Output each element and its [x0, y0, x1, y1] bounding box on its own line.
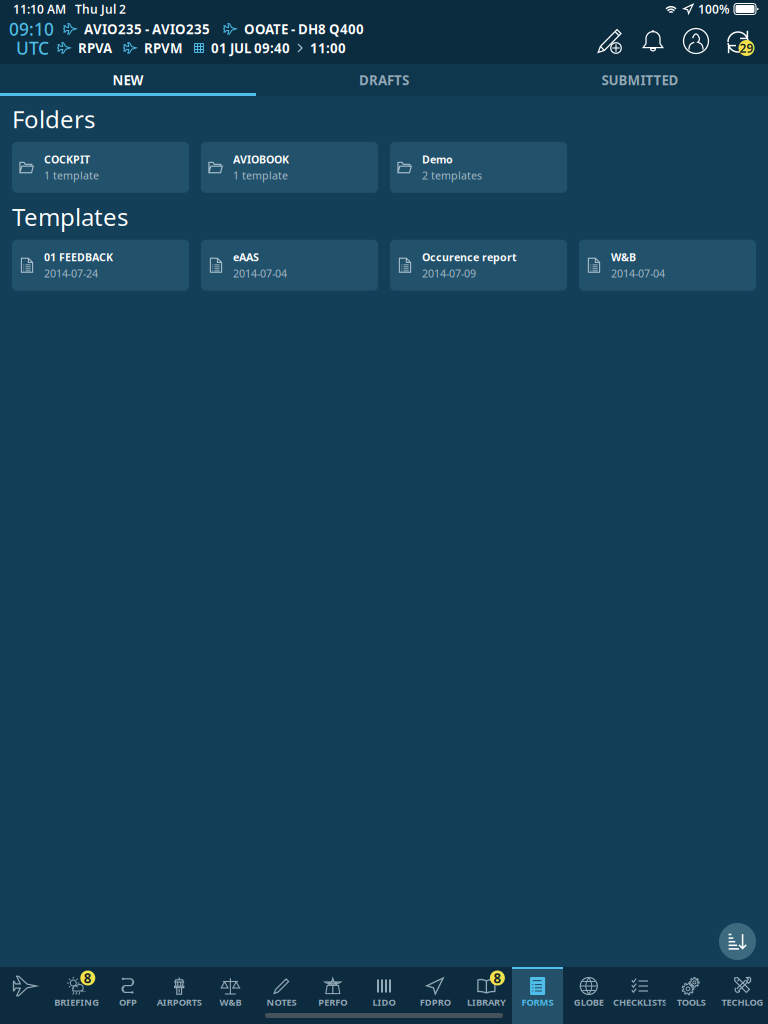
staticText: RPVA: [78, 39, 112, 57]
button[interactable]: CHECKLISTS: [614, 967, 666, 1024]
staticText: NOTES: [267, 996, 297, 1008]
staticText: GLOBE: [574, 996, 604, 1008]
button[interactable]: COCKPIT: [12, 142, 189, 193]
button[interactable]: NOTES: [256, 967, 307, 1024]
button[interactable]: AVIOBOOK: [201, 142, 378, 193]
button[interactable]: Demo: [390, 142, 567, 193]
button[interactable]: DRAFTS: [256, 64, 512, 96]
staticText: Thu Jul 2: [75, 1, 126, 17]
staticText: W&B: [611, 250, 636, 264]
staticText: W&B: [219, 996, 241, 1008]
button[interactable]: Profile: [683, 28, 709, 54]
button[interactable]: PERFO: [307, 967, 358, 1024]
button[interactable]: TOOLS: [666, 967, 717, 1024]
button[interactable]: OFP: [102, 967, 154, 1024]
staticText: FDPRO: [420, 996, 451, 1008]
staticText: 01 FEEDBACK: [44, 250, 113, 264]
button[interactable]: LIDO: [358, 967, 410, 1024]
staticText: TOOLS: [677, 996, 706, 1008]
button[interactable]: GLOBE: [563, 967, 614, 1024]
staticText: 2014-07-24: [44, 266, 98, 280]
staticText: Folders: [12, 103, 95, 135]
button[interactable]: 8: [461, 967, 512, 1024]
button[interactable]: [0, 967, 51, 1024]
staticText: COCKPIT: [44, 152, 90, 166]
button[interactable]: TECHLOG: [717, 967, 768, 1024]
staticText: eAAS: [233, 250, 259, 264]
button[interactable]: 8: [51, 967, 102, 1024]
button[interactable]: NEW: [0, 64, 256, 96]
button[interactable]: W&B: [579, 240, 756, 291]
staticText: PERFO: [318, 996, 347, 1008]
staticText: LIDO: [372, 996, 395, 1008]
staticText: OFP: [119, 996, 137, 1008]
staticText: DRAFTS: [359, 71, 409, 89]
staticText: RPVM: [144, 39, 183, 57]
staticText: BRIEFING: [54, 996, 99, 1008]
button[interactable]: 01 FEEDBACK: [12, 240, 189, 291]
button[interactable]: FDPRO: [410, 967, 461, 1024]
staticText: SUBMITTED: [601, 71, 678, 89]
staticText: Occurence report: [422, 250, 517, 264]
staticText: TECHLOG: [721, 996, 763, 1008]
button[interactable]: Notifications: [640, 28, 666, 54]
staticText: 11:10 AM: [13, 1, 66, 17]
staticText: 8: [84, 969, 92, 987]
staticText: AVIO235 - AVIO235: [84, 20, 210, 38]
button[interactable]: Sort: [715, 919, 760, 964]
button[interactable]: eAAS: [201, 240, 378, 291]
staticText: 09:10: [9, 17, 54, 40]
button[interactable]: FORMS: [512, 967, 563, 1024]
staticText: 1 template: [233, 168, 288, 183]
button[interactable]: SUBMITTED: [512, 64, 768, 96]
staticText: 29: [739, 40, 753, 56]
button[interactable]: AIRPORTS: [154, 967, 205, 1024]
staticText: 100%: [698, 1, 730, 17]
staticText: AVIOBOOK: [233, 152, 289, 166]
staticText: Demo: [422, 152, 453, 166]
staticText: 01 JUL 09:40: [211, 39, 290, 57]
staticText: FORMS: [522, 996, 554, 1008]
staticText: 2 templates: [422, 168, 482, 183]
staticText: 2014-07-04: [233, 266, 287, 280]
staticText: AIRPORTS: [157, 996, 202, 1008]
staticText: LIBRARY: [467, 996, 506, 1008]
staticText: Templates: [12, 201, 128, 233]
button[interactable]: New form: [597, 28, 623, 54]
staticText: UTC: [16, 36, 49, 59]
button[interactable]: Occurence report: [390, 240, 567, 291]
staticText: 2014-07-04: [611, 266, 665, 280]
staticText: 11:00: [310, 39, 346, 57]
staticText: 2014-07-09: [422, 266, 476, 280]
staticText: 8: [493, 969, 501, 987]
staticText: 1 template: [44, 168, 99, 183]
staticText: OOATE - DH8 Q400: [244, 20, 364, 38]
staticText: NEW: [112, 71, 143, 89]
staticText: CHECKLISTS: [613, 996, 667, 1008]
button[interactable]: W&B: [205, 967, 256, 1024]
button[interactable]: Sync: [726, 28, 752, 54]
